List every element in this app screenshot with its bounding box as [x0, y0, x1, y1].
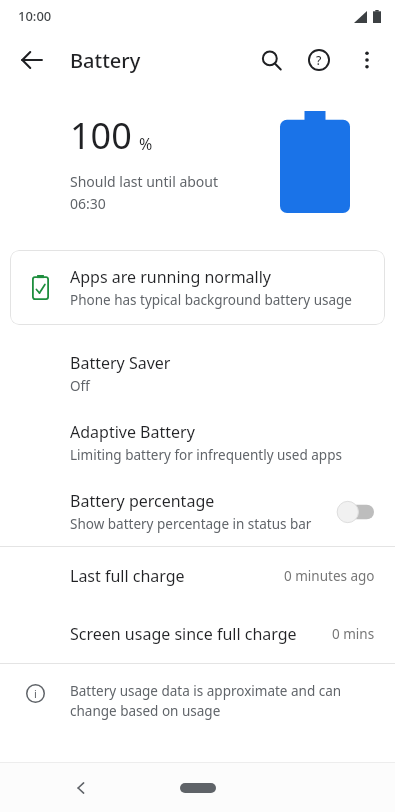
staticText: Adaptive Battery	[70, 421, 195, 443]
staticText: Apps are running normally	[70, 266, 271, 288]
staticText: Battery	[70, 47, 141, 74]
staticText: Phone has typical background battery usa…	[70, 291, 352, 309]
button[interactable]: Adaptive Battery	[0, 408, 395, 477]
staticText: Battery Saver	[70, 352, 171, 374]
button[interactable]: Last full charge	[0, 547, 395, 605]
button[interactable]: More options	[343, 36, 391, 84]
staticText: Battery usage data is approximate and ca…	[70, 682, 365, 720]
staticText: 06:30	[70, 194, 106, 213]
staticText: Off	[70, 377, 90, 395]
button[interactable]: Back	[64, 771, 98, 805]
button[interactable]: Apps are running normally	[10, 250, 385, 325]
button[interactable]: Home	[180, 783, 216, 793]
staticText: Screen usage since full charge	[70, 623, 297, 645]
staticText: Should last until about	[70, 172, 219, 191]
staticText: Battery percentage	[70, 490, 215, 512]
button[interactable]: Back	[8, 36, 56, 84]
staticText: i	[34, 686, 37, 701]
staticText: Show battery percentage in status bar	[70, 515, 312, 533]
staticText: 0 minutes ago	[284, 567, 375, 585]
staticText: Last full charge	[70, 565, 185, 587]
staticText: ?	[316, 52, 322, 68]
button[interactable]: Search	[247, 36, 295, 84]
button[interactable]: Screen usage since full charge	[0, 605, 395, 663]
staticText: %	[139, 133, 153, 155]
staticText: Limiting battery for infrequently used a…	[70, 446, 342, 464]
staticText: 10:00	[18, 7, 52, 25]
staticText: 0 mins	[332, 625, 375, 643]
button[interactable]: Help	[295, 36, 343, 84]
button[interactable]: Battery Saver	[0, 339, 395, 408]
button[interactable]: Battery percentage	[0, 477, 395, 546]
staticText: 100	[70, 111, 132, 160]
